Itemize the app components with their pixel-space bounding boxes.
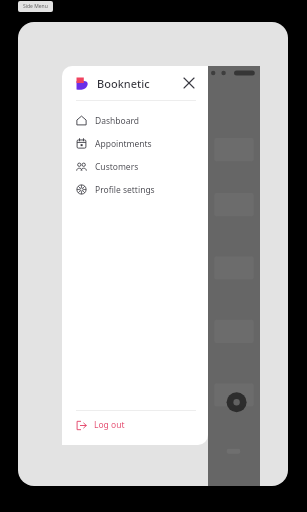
button[interactable]: Close menu xyxy=(180,74,198,92)
staticText: Side Menu xyxy=(23,3,48,10)
staticText: Profile settings xyxy=(95,184,155,196)
staticText: Customers xyxy=(95,161,139,173)
button[interactable]: Dashboard xyxy=(62,109,208,132)
staticText: Appointments xyxy=(95,138,152,150)
staticText: Dashboard xyxy=(95,115,140,127)
button[interactable]: Appointments xyxy=(62,132,208,155)
staticText: Log out xyxy=(94,419,125,431)
button[interactable]: Customers xyxy=(62,155,208,178)
button[interactable]: Log out xyxy=(62,411,208,439)
staticText: Booknetic xyxy=(97,76,150,91)
button[interactable]: Profile settings xyxy=(62,178,208,201)
